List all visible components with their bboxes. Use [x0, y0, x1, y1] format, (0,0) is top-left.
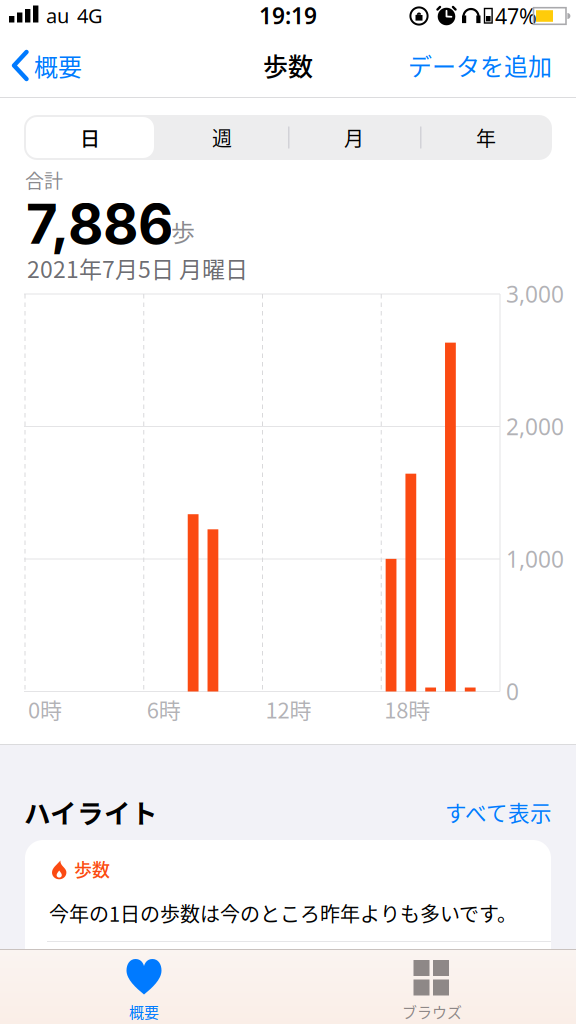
staticText: 歩: [171, 214, 195, 248]
staticText: 0: [506, 676, 519, 706]
staticText: 2021年7月5日 月曜日: [27, 251, 248, 285]
staticText: 0時: [28, 693, 62, 725]
staticText: 月: [344, 123, 364, 152]
button[interactable]: 年: [420, 115, 552, 160]
button[interactable]: ブラウズ: [288, 949, 576, 1024]
staticText: 概要: [34, 48, 82, 83]
staticText: 3,000: [506, 279, 564, 309]
staticText: 6時: [147, 693, 181, 725]
staticText: au: [46, 2, 69, 29]
staticText: 4G: [77, 2, 103, 29]
button[interactable]: 週: [156, 115, 288, 160]
staticText: すべて表示: [445, 796, 552, 827]
staticText: 日: [80, 123, 100, 152]
staticText: 歩数: [263, 47, 313, 83]
staticText: 47%: [495, 2, 537, 30]
staticText: 1,000: [506, 544, 564, 574]
button[interactable]: 日: [24, 115, 156, 160]
staticText: 今年の1日の歩数は今のところ昨年よりも多いです。: [49, 898, 517, 927]
staticText: 年: [476, 123, 496, 152]
staticText: ハイライト: [24, 793, 158, 831]
staticText: 合計: [25, 166, 63, 194]
staticText: 歩数: [74, 856, 110, 882]
staticText: 2,000: [506, 411, 564, 441]
staticText: データを追加: [408, 48, 552, 82]
button[interactable]: 歩数: [25, 840, 551, 1008]
staticText: 週: [212, 123, 232, 152]
button[interactable]: データを追加: [332, 35, 552, 95]
button[interactable]: 概要: [0, 949, 288, 1024]
staticText: 12時: [265, 693, 311, 725]
button[interactable]: 月: [288, 115, 420, 160]
staticText: 18時: [384, 693, 430, 725]
button[interactable]: すべて表示: [352, 782, 552, 842]
staticText: 19:19: [259, 0, 317, 30]
staticText: 概要: [129, 1001, 159, 1022]
staticText: ブラウズ: [402, 1001, 462, 1022]
button[interactable]: 概要: [10, 42, 130, 89]
staticText: 7,886: [26, 191, 173, 257]
